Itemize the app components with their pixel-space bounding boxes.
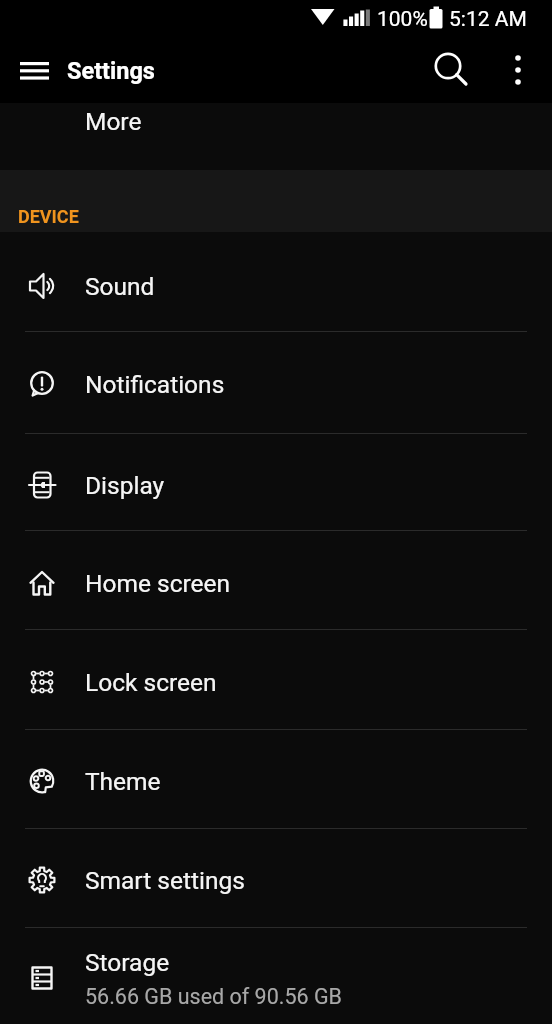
- button[interactable]: [0, 730, 552, 828]
- button[interactable]: [424, 46, 472, 94]
- button[interactable]: [10, 49, 58, 93]
- button[interactable]: [0, 332, 552, 433]
- staticText: Storage: [85, 948, 170, 977]
- button[interactable]: [0, 928, 552, 1024]
- button[interactable]: [0, 103, 552, 170]
- staticText: Home screen: [85, 569, 231, 598]
- staticText: Theme: [85, 767, 161, 796]
- staticText: More: [85, 107, 142, 136]
- staticText: 56.66 GB used of 90.56 GB: [85, 984, 342, 1009]
- staticText: Lock screen: [85, 668, 217, 697]
- staticText: 5:12 AM: [449, 7, 527, 32]
- staticText: DEVICE: [18, 206, 79, 227]
- button[interactable]: [0, 531, 552, 629]
- staticText: Settings: [67, 57, 155, 85]
- button[interactable]: [494, 46, 542, 94]
- staticText: Notifications: [85, 370, 225, 399]
- staticText: Sound: [85, 272, 155, 301]
- staticText: 100%: [377, 7, 428, 32]
- button[interactable]: [0, 434, 552, 530]
- staticText: Smart settings: [85, 866, 245, 895]
- button[interactable]: [0, 232, 552, 331]
- button[interactable]: [0, 829, 552, 927]
- staticText: Display: [85, 471, 165, 500]
- button[interactable]: [0, 630, 552, 729]
